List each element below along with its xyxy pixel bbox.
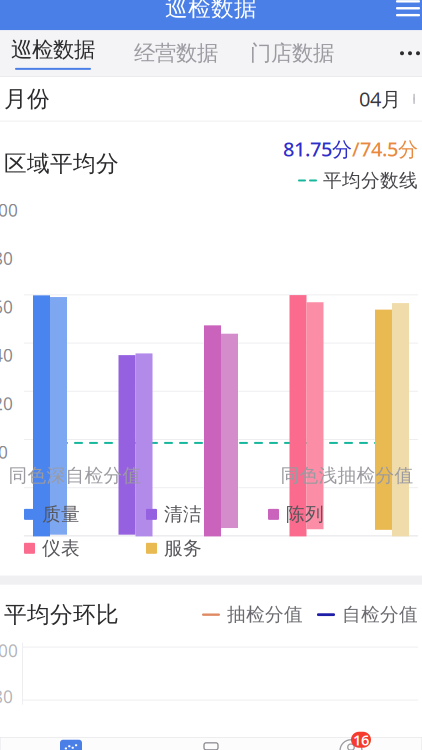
button[interactable]: 数据 xyxy=(1,738,141,750)
staticText: 60 xyxy=(0,295,13,318)
staticText: 仪表 xyxy=(42,537,80,560)
staticText: 服务 xyxy=(164,537,202,560)
staticText: 20 xyxy=(0,392,13,415)
staticText: 陈列 xyxy=(286,503,324,526)
staticText: 80 xyxy=(0,247,13,270)
staticText: 巡检数据 xyxy=(165,0,257,22)
staticText: 同色深自检分值 xyxy=(8,464,141,487)
staticText: 清洁 xyxy=(164,503,202,526)
staticText: 月份 xyxy=(4,85,50,113)
button[interactable]: 菜单 xyxy=(382,0,422,30)
button[interactable]: 巡检数据 xyxy=(0,30,118,76)
staticText: 平均分环比 xyxy=(4,601,119,628)
button[interactable]: 月份 xyxy=(0,77,422,121)
button[interactable]: 门店数据 xyxy=(234,30,350,76)
staticText: 100 xyxy=(0,639,18,662)
staticText: 04月 xyxy=(359,86,401,112)
button[interactable]: 16 xyxy=(281,738,421,750)
staticText: 0 xyxy=(0,440,8,463)
staticText: 门店数据 xyxy=(250,40,334,66)
staticText: 平均分数线 xyxy=(323,169,418,192)
button[interactable]: 经营数据 xyxy=(118,30,234,76)
staticText: /74.5分 xyxy=(352,135,418,162)
button[interactable]: 工作 xyxy=(141,738,281,750)
staticText: 自检分值 xyxy=(342,603,418,626)
staticText: 81.75分 xyxy=(283,135,352,162)
staticText: 质量 xyxy=(42,503,80,526)
staticText: 区域平均分 xyxy=(4,150,119,178)
staticText: 经营数据 xyxy=(134,40,218,66)
staticText: 100 xyxy=(0,198,18,221)
button[interactable]: 更多 xyxy=(386,30,422,76)
staticText: 40 xyxy=(0,344,13,367)
staticText: 巡检数据 xyxy=(11,37,95,63)
staticText: 抽检分值 xyxy=(227,603,303,626)
staticText: 80 xyxy=(0,685,13,708)
staticText: 16 xyxy=(353,730,369,749)
staticText: 同色浅抽检分值 xyxy=(280,464,413,487)
